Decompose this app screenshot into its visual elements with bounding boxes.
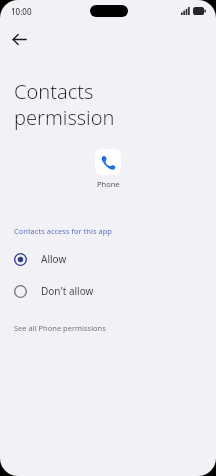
staticText: Contacts access for this app xyxy=(14,226,112,236)
button[interactable]: Allow xyxy=(0,249,216,269)
staticText: See all Phone permissions xyxy=(14,323,106,333)
button[interactable]: See all Phone permissions xyxy=(0,321,216,335)
button[interactable]: Don't allow xyxy=(0,281,216,301)
staticText: Allow xyxy=(41,252,67,266)
staticText: Phone xyxy=(97,179,120,189)
staticText: Contacts permission xyxy=(14,78,115,131)
staticText: Don't allow xyxy=(41,284,94,298)
button[interactable]: Back xyxy=(6,26,32,52)
staticText: 10:00 xyxy=(11,6,32,17)
